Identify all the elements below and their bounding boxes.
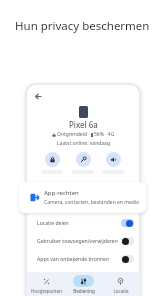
button[interactable]: App-rechten	[19, 182, 146, 213]
button[interactable]: Locatie delen	[27, 214, 139, 232]
staticText: Apps van onbekende bronnen	[37, 256, 121, 263]
button[interactable]: Hoogtepunten	[27, 275, 65, 294]
button[interactable]: Wissen	[72, 152, 94, 174]
staticText: Hoogtepunten	[31, 288, 62, 294]
staticText: Locatie	[113, 288, 129, 294]
button[interactable]: Gebruiker toevoegen/verwijderen	[27, 232, 139, 250]
staticText: Camera, contacten, bestanden en media	[44, 199, 139, 206]
button[interactable]: Locatie	[102, 275, 139, 294]
staticText: Ontgrendeld ·	[57, 131, 90, 138]
staticText: Bediening	[73, 288, 95, 294]
staticText: Laatst online: vandaag	[57, 140, 110, 147]
button[interactable]: Geluid	[102, 152, 124, 174]
button[interactable]: Beveiligen	[41, 152, 63, 174]
staticText: App-rechten	[44, 189, 79, 197]
staticText: Hun privacy beschermen	[15, 18, 150, 34]
staticText: Gebruiker toevoegen/verwijderen	[37, 238, 121, 245]
button[interactable]: Apps van onbekende bronnen	[27, 250, 139, 268]
staticText: 56% · 4G	[94, 131, 115, 138]
staticText: Locatie delen	[37, 220, 121, 227]
button[interactable]: Back	[34, 92, 43, 101]
staticText: Pixel 6a	[69, 119, 98, 130]
button[interactable]: Bediening	[65, 275, 102, 294]
